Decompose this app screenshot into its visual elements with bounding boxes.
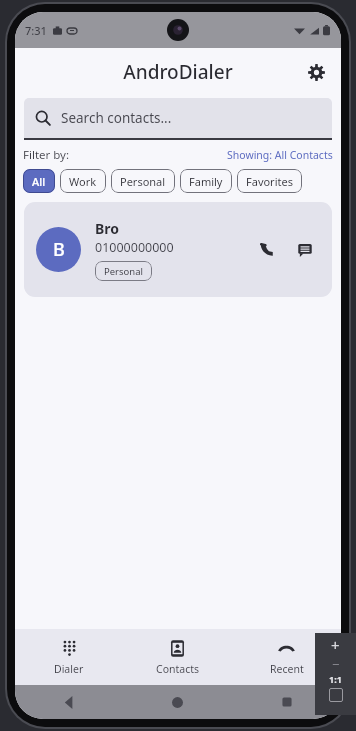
button[interactable]: Recent [232, 629, 341, 685]
button[interactable]: Dialer [15, 629, 123, 685]
button[interactable]: Call [252, 235, 282, 265]
button[interactable]: Family [180, 169, 232, 193]
staticText: − [332, 655, 340, 673]
button[interactable]: All [23, 169, 55, 193]
button[interactable]: Message [290, 235, 320, 265]
staticText: 1:1 [329, 673, 342, 685]
staticText: Recent [270, 662, 304, 676]
staticText: 01000000000 [95, 239, 174, 256]
staticText: Search contacts... [61, 109, 172, 127]
staticText: Favorites [246, 174, 293, 189]
staticText: All [32, 174, 46, 189]
staticText: + [331, 635, 340, 655]
staticText: Contacts [156, 662, 200, 676]
staticText: Filter by: [23, 147, 70, 163]
staticText: Work [69, 174, 97, 189]
button[interactable]: Search contacts... [24, 98, 332, 138]
staticText: Dialer [54, 662, 84, 676]
button[interactable]: Showing: All Contacts [227, 148, 333, 162]
staticText: B [53, 237, 65, 262]
staticText: Bro [95, 219, 120, 238]
button[interactable]: Personal [95, 261, 152, 281]
staticText: Personal [104, 265, 143, 278]
staticText: Family [189, 174, 223, 189]
button[interactable]: Back [15, 685, 123, 719]
staticText: Personal [120, 174, 166, 189]
button[interactable]: Favorites [237, 169, 302, 193]
button[interactable]: Work [60, 169, 106, 193]
staticText: AndroDialer [123, 59, 233, 85]
staticText: 7:31 [25, 23, 47, 38]
button[interactable]: Personal [111, 169, 175, 193]
button[interactable]: Recents [232, 685, 341, 719]
button[interactable]: Settings [299, 55, 333, 89]
button[interactable]: Contacts [123, 629, 232, 685]
button[interactable]: B [24, 202, 332, 297]
button[interactable]: Home [123, 685, 232, 719]
